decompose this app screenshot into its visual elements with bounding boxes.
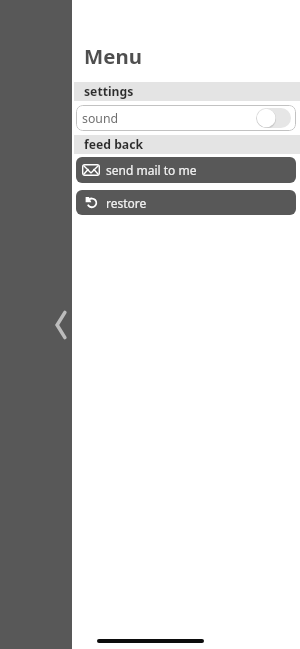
staticText: settings (84, 83, 134, 100)
staticText: send mail to me (106, 162, 197, 178)
staticText: Menu (84, 42, 142, 70)
button[interactable]: Back (54, 310, 68, 340)
button[interactable]: feed back (74, 135, 300, 154)
button[interactable]: Sound toggle (256, 108, 291, 128)
button[interactable]: restore (76, 190, 296, 215)
button[interactable]: settings (74, 82, 300, 101)
staticText: sound (82, 110, 119, 127)
button[interactable]: sound (76, 105, 296, 131)
button[interactable]: send mail to me (76, 157, 296, 183)
staticText: feed back (84, 136, 143, 153)
staticText: restore (106, 195, 147, 211)
